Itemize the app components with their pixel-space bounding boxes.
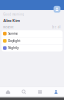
button[interactable]: Daylight <box>1 37 63 45</box>
button[interactable]: Home <box>0 87 16 97</box>
button[interactable]: Profile <box>54 6 60 13</box>
button[interactable]: See all <box>52 25 61 29</box>
button[interactable]: Library <box>32 87 48 97</box>
staticText: Sunrise <box>8 32 18 35</box>
button[interactable]: Nightly <box>1 45 63 51</box>
staticText: Recent <box>3 25 13 29</box>
staticText: Good morning <box>3 13 24 16</box>
staticText: Nightly <box>8 46 18 50</box>
staticText: Daylight <box>8 39 20 43</box>
staticText: See all <box>52 25 61 29</box>
button[interactable]: Profile <box>48 87 64 97</box>
staticText: Alex Kim <box>3 18 20 23</box>
button[interactable]: Sunrise <box>1 30 63 37</box>
button[interactable]: Search <box>16 87 32 97</box>
